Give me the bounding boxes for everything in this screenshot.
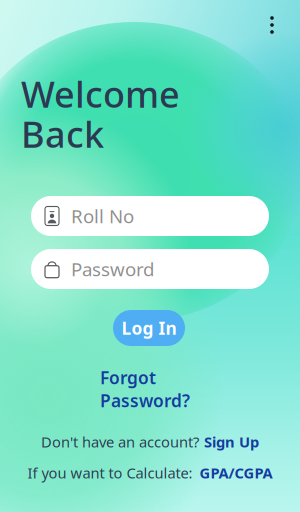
staticText: Password [71,257,154,281]
button[interactable]: Sign Up [204,432,259,451]
staticText: Welcome [21,70,180,118]
staticText: GPA/CGPA [199,463,272,482]
staticText: If you want to Calculate: [27,463,192,482]
staticText: Log In [121,316,176,339]
button[interactable]: Forgot [100,366,190,412]
button[interactable]: More options [259,11,285,39]
button[interactable]: Log In [113,310,185,346]
staticText: Roll No [71,204,134,228]
staticText: Don't have an account? [41,432,199,451]
staticText: Sign Up [204,432,259,451]
staticText: Back [21,110,104,158]
button[interactable]: Roll No [31,196,269,236]
button[interactable]: Password [31,249,269,289]
button[interactable]: GPA/CGPA [199,463,272,482]
staticText: Forgot [100,366,156,389]
staticText: Password? [100,389,190,412]
